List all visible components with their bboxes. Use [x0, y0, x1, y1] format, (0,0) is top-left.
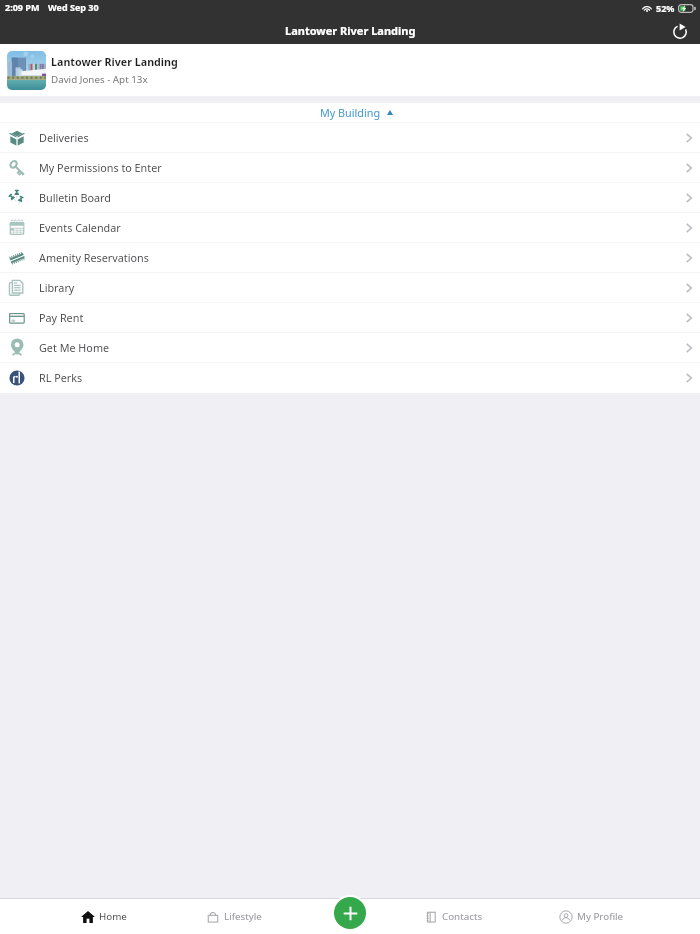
staticText: Library: [39, 280, 75, 295]
button[interactable]: My Building: [0, 103, 700, 122]
staticText: David Jones - Apt 13x: [51, 73, 148, 86]
button[interactable]: My Permissions to Enter: [0, 153, 700, 182]
button[interactable]: Bulletin Board: [0, 183, 700, 212]
button[interactable]: Get Me Home: [0, 333, 700, 362]
staticText: 2:09 PM: [5, 1, 40, 13]
staticText: Contacts: [442, 910, 483, 923]
staticText: Lifestyle: [224, 910, 262, 923]
button[interactable]: Contacts: [424, 899, 483, 934]
staticText: Lantower River Landing: [51, 55, 178, 70]
staticText: Pay Rent: [39, 310, 84, 325]
button[interactable]: Deliveries: [0, 123, 700, 152]
button[interactable]: My Profile: [559, 899, 624, 934]
staticText: My Permissions to Enter: [39, 160, 162, 175]
staticText: RL Perks: [39, 370, 83, 385]
staticText: My Building: [320, 105, 381, 120]
button[interactable]: RL Perks: [0, 363, 700, 392]
button[interactable]: Refresh: [672, 18, 698, 44]
staticText: Lantower River Landing: [285, 23, 416, 38]
button[interactable]: Lantower River Landing: [0, 44, 700, 96]
button[interactable]: Amenity Reservations: [0, 243, 700, 272]
button[interactable]: Pay Rent: [0, 303, 700, 332]
button[interactable]: Events Calendar: [0, 213, 700, 242]
staticText: Deliveries: [39, 130, 89, 145]
staticText: Bulletin Board: [39, 190, 112, 205]
button[interactable]: Library: [0, 273, 700, 302]
staticText: Get Me Home: [39, 340, 110, 355]
staticText: My Profile: [577, 910, 624, 923]
button[interactable]: Home: [81, 899, 127, 934]
staticText: Home: [99, 910, 127, 923]
button[interactable]: Add: [334, 897, 366, 929]
staticText: Amenity Reservations: [39, 250, 149, 265]
staticText: 52%: [656, 2, 675, 14]
button[interactable]: Lifestyle: [206, 899, 262, 934]
staticText: Wed Sep 30: [48, 1, 99, 13]
staticText: Events Calendar: [39, 220, 121, 235]
